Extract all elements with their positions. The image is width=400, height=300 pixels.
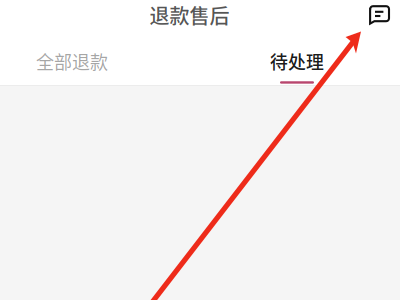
- button[interactable]: 待处理: [243, 48, 351, 84]
- button[interactable]: Messages: [365, 1, 395, 31]
- staticText: 待处理: [270, 48, 324, 74]
- staticText: 退款售后: [149, 0, 229, 29]
- staticText: 全部退款: [36, 48, 108, 74]
- button[interactable]: 全部退款: [18, 48, 126, 84]
